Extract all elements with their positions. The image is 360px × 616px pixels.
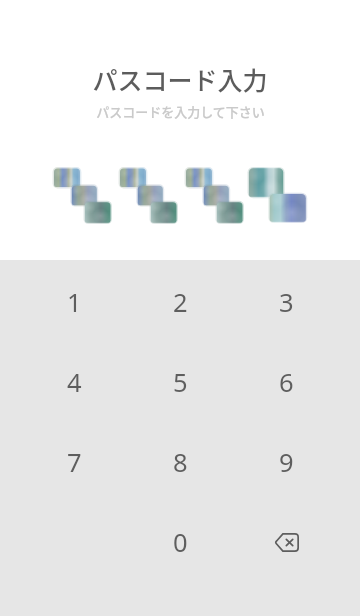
button[interactable]: Backspace [233, 502, 339, 582]
staticText: パスコード入力 [92, 61, 268, 97]
staticText: 5 [173, 365, 188, 400]
staticText: 1 [67, 285, 82, 320]
button[interactable]: 0 [127, 502, 233, 582]
button[interactable]: 3 [233, 262, 339, 342]
staticText: 4 [67, 365, 82, 400]
staticText: 2 [173, 285, 188, 320]
staticText: 6 [279, 365, 294, 400]
staticText: 9 [279, 445, 294, 480]
staticText: 3 [279, 285, 294, 320]
button[interactable]: 1 [21, 262, 127, 342]
button[interactable]: 5 [127, 342, 233, 422]
button[interactable]: 9 [233, 422, 339, 502]
button[interactable]: 6 [233, 342, 339, 422]
staticText: 7 [67, 445, 82, 480]
button[interactable]: 4 [21, 342, 127, 422]
button[interactable]: 7 [21, 422, 127, 502]
staticText: 0 [173, 525, 188, 560]
button[interactable]: 8 [127, 422, 233, 502]
other: Backspace [274, 533, 299, 552]
staticText: パスコードを入力して下さい [96, 102, 265, 121]
button[interactable]: 2 [127, 262, 233, 342]
staticText: 8 [173, 445, 188, 480]
